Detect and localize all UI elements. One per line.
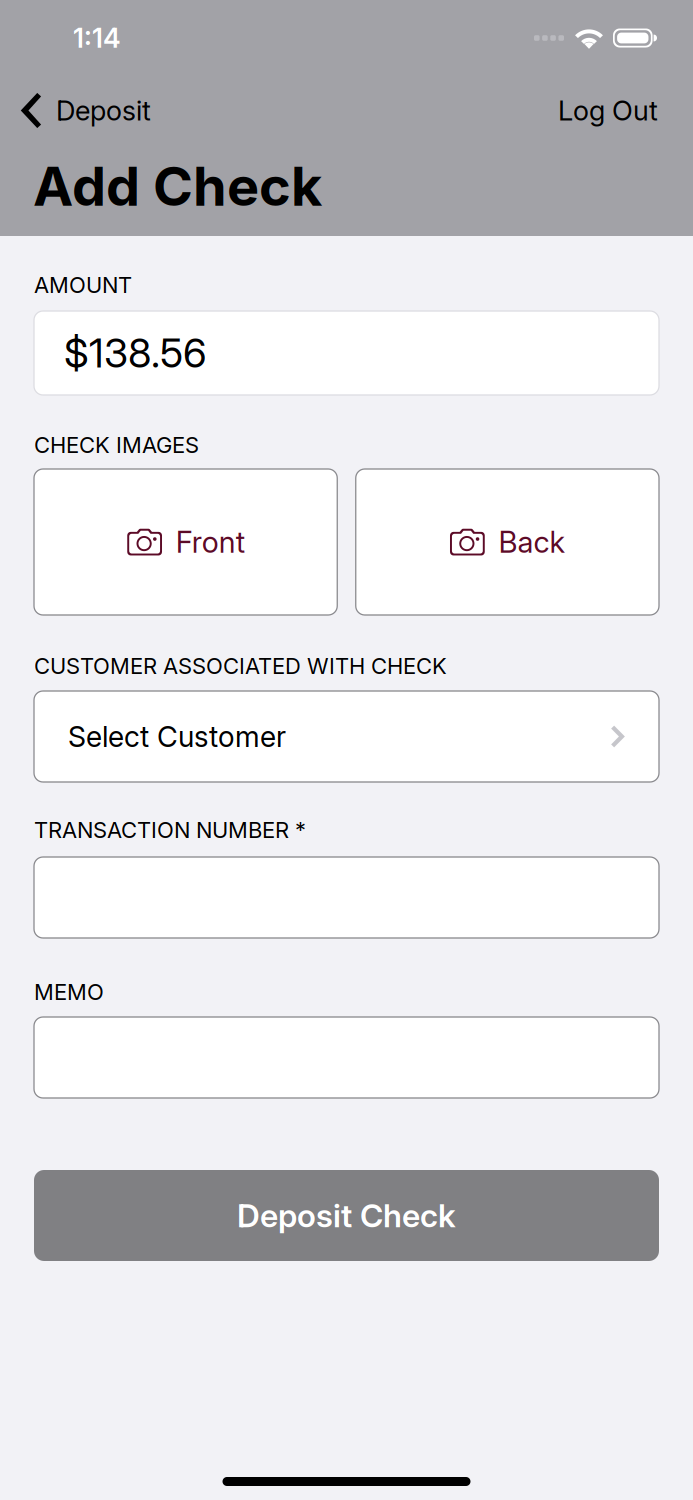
button[interactable]: Deposit Check: [34, 1170, 659, 1261]
staticText: Deposit Check: [237, 1196, 456, 1235]
staticText: TRANSACTION NUMBER *: [34, 817, 306, 843]
button[interactable]: Front: [34, 469, 337, 615]
button[interactable]: Back: [356, 469, 659, 615]
button[interactable]: Log Out: [546, 92, 693, 129]
staticText: Select Customer: [68, 719, 286, 754]
staticText: 1:14: [73, 22, 121, 54]
button[interactable]: Deposit: [0, 88, 163, 133]
staticText: MEMO: [34, 979, 104, 1005]
staticText: Deposit: [56, 94, 151, 127]
staticText: Front: [176, 524, 245, 560]
staticText: $138.56: [64, 329, 207, 377]
staticText: CUSTOMER ASSOCIATED WITH CHECK: [34, 653, 447, 679]
staticText: AMOUNT: [34, 272, 132, 298]
staticText: Back: [498, 524, 565, 560]
staticText: Add Check: [33, 153, 322, 219]
staticText: CHECK IMAGES: [34, 432, 199, 458]
staticText: Log Out: [558, 94, 658, 127]
button[interactable]: Select Customer: [34, 691, 659, 782]
